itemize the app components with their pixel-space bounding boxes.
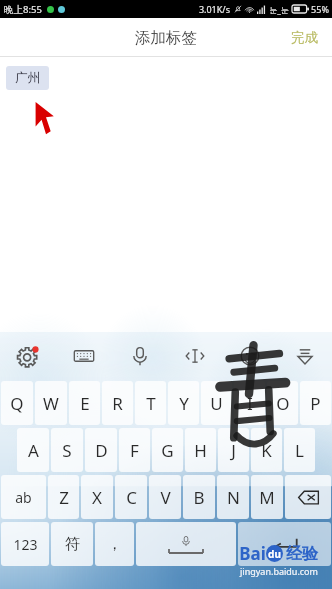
staticText: 经验 [286,544,318,564]
staticText: U [210,392,223,415]
staticText: T [146,392,156,415]
button[interactable]: H [185,428,216,472]
staticText: Y [179,392,189,415]
staticText: B [193,486,205,509]
staticText: F [130,439,139,462]
button[interactable]: G [152,428,183,472]
button[interactable]: Y [168,381,199,425]
button[interactable]: W [35,381,67,425]
button[interactable]: T [135,381,166,425]
button[interactable]: O [267,381,298,425]
button[interactable]: D [85,428,117,472]
button[interactable]: S [51,428,83,472]
button[interactable]: F [119,428,150,472]
staticText: S [62,439,72,462]
staticText: N [227,486,240,509]
button[interactable]: Emoji [222,332,277,379]
staticText: K [261,439,272,462]
button[interactable]: P [300,381,331,425]
button[interactable]: Backspace [285,475,331,519]
staticText: 눈_눈 [269,4,289,15]
staticText: 添加标签 [135,28,197,48]
staticText: R [112,392,123,415]
staticText: V [160,486,171,509]
staticText: I [247,392,253,415]
button[interactable]: 广州 [6,66,49,90]
button[interactable]: M [251,475,283,519]
button[interactable]: Switch keyboard layout [56,332,112,379]
staticText: D [95,439,108,462]
button[interactable]: L [284,428,315,472]
staticText: L [295,439,304,462]
button[interactable]: N [217,475,249,519]
button[interactable]: Voice input [112,332,167,379]
staticText: 广州 [15,70,40,86]
staticText: C [126,486,137,509]
button[interactable]: J [218,428,249,472]
button[interactable]: E [69,381,100,425]
staticText: J [231,439,236,462]
staticText: Q [10,392,24,415]
button[interactable]: Move cursor [167,332,222,379]
button[interactable]: 完成 [277,21,332,54]
button[interactable]: Enter [238,522,331,566]
staticText: jingyan.baidu.com [240,565,318,577]
button[interactable]: Hide keyboard [277,332,332,379]
staticText: 符 [65,535,80,554]
button[interactable]: 123 [1,522,49,566]
staticText: M [259,486,275,509]
button[interactable]: Space [136,522,236,566]
staticText: Bai [239,542,266,565]
staticText: A [28,439,39,462]
staticText: 123 [13,535,38,554]
button[interactable]: 符 [51,522,93,566]
staticText: du [268,547,281,561]
staticText: H [194,439,207,462]
button[interactable]: ab [1,475,46,519]
staticText: ab [15,488,32,507]
button[interactable]: V [149,475,181,519]
staticText: 晚上8:55 [4,3,42,16]
staticText: 55% [311,3,329,15]
button[interactable]: ， [95,522,134,566]
button[interactable]: R [102,381,133,425]
button[interactable]: C [115,475,147,519]
staticText: G [161,439,174,462]
staticText: W [43,392,59,415]
button[interactable]: Keyboard settings [0,332,56,379]
button[interactable]: I [234,381,265,425]
staticText: 3.01K/s [198,3,230,15]
staticText: E [80,392,90,415]
staticText: O [276,392,290,415]
staticText: ， [107,535,122,554]
staticText: X [92,486,102,509]
staticText: Z [59,486,69,509]
button[interactable]: U [201,381,232,425]
staticText: 完成 [291,29,318,46]
button[interactable]: K [251,428,282,472]
button[interactable]: Q [1,381,33,425]
button[interactable]: A [17,428,49,472]
button[interactable]: X [81,475,113,519]
staticText: P [310,392,321,415]
button[interactable]: B [183,475,215,519]
button[interactable]: Z [48,475,79,519]
